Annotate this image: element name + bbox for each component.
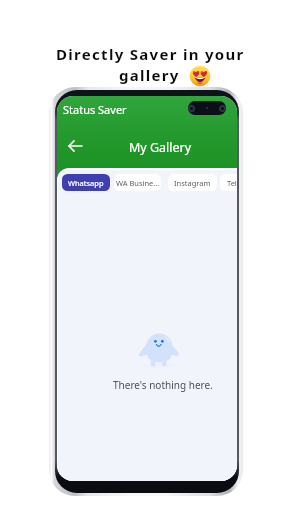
- staticText: There's nothing here.: [113, 378, 213, 392]
- button[interactable]: Instagram: [168, 174, 217, 191]
- staticText: My Gallery: [129, 139, 192, 156]
- staticText: Directly Saver in your: [56, 44, 245, 64]
- staticText: Instagram: [174, 178, 211, 188]
- button[interactable]: WA Busine…: [114, 174, 161, 191]
- button[interactable]: Whatsapp: [62, 174, 110, 191]
- staticText: Whatsapp: [68, 178, 104, 188]
- button[interactable]: Telegram: [220, 174, 237, 191]
- staticText: Status Saver: [63, 102, 127, 117]
- staticText: gallery: [119, 65, 180, 85]
- button[interactable]: Back: [63, 134, 87, 158]
- staticText: Telegram: [227, 178, 237, 188]
- staticText: WA Busine…: [116, 178, 160, 188]
